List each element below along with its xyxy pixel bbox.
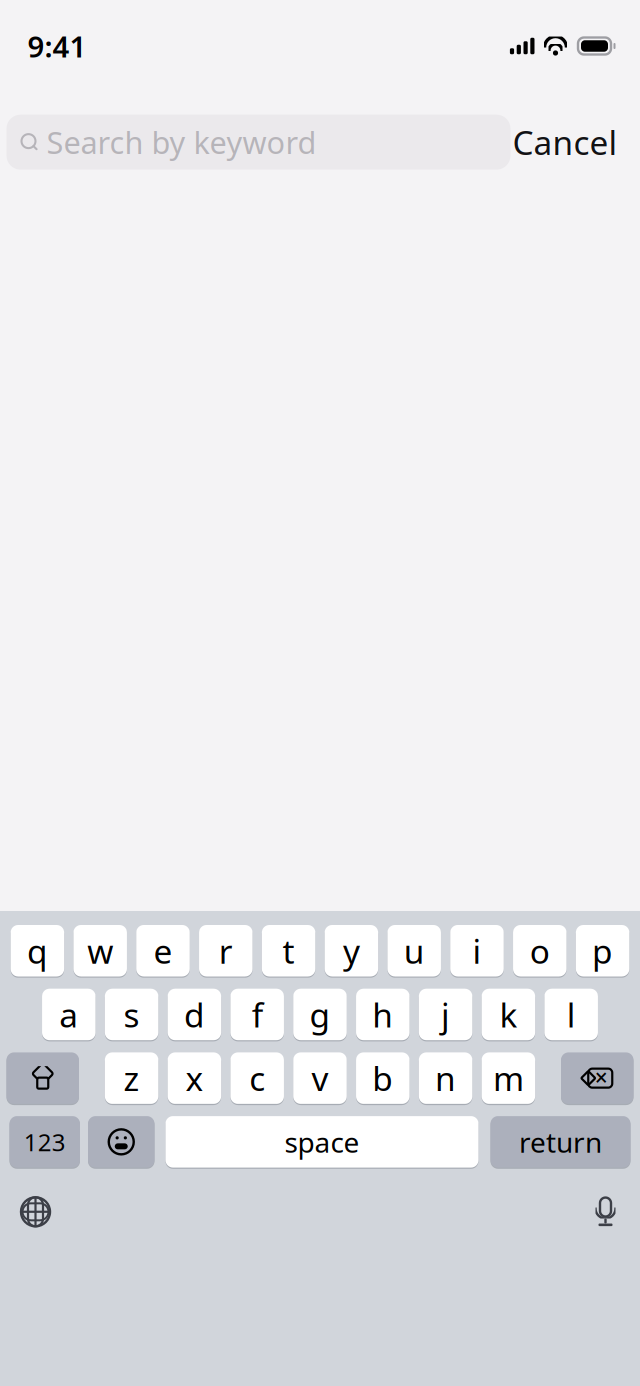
staticText: space [284,1123,359,1160]
staticText: Cancel [512,120,617,164]
staticText: m [493,1056,524,1100]
button[interactable]: g [293,989,347,1041]
button[interactable]: z [105,1052,158,1105]
staticText: return [519,1123,602,1160]
staticText: d [184,992,205,1037]
button[interactable]: a [42,989,96,1041]
button[interactable]: x [168,1052,221,1105]
button[interactable]: v [293,1052,347,1105]
staticText: × [595,1062,608,1092]
button[interactable]: q [11,925,64,978]
button[interactable]: Search by keyword [6,115,510,170]
staticText: s [124,992,140,1037]
button[interactable]: Delete [561,1052,633,1105]
staticText: y [343,929,360,973]
button[interactable]: Cancel [510,112,619,172]
button[interactable]: Next keyboard [9,1186,61,1238]
button[interactable]: k [482,989,535,1041]
button[interactable]: space [165,1116,478,1169]
button[interactable]: d [168,989,221,1041]
staticText: x [185,1056,203,1100]
staticText: k [499,992,517,1037]
staticText: v [311,1056,328,1100]
button[interactable]: n [419,1052,472,1105]
staticText: f [252,992,263,1037]
button[interactable]: c [230,1052,284,1105]
button[interactable]: j [419,989,472,1041]
button[interactable]: s [105,989,158,1041]
staticText: w [87,929,113,973]
staticText: t [283,929,295,973]
button[interactable]: h [356,989,410,1041]
staticText: 9:41 [27,26,86,65]
button[interactable]: m [482,1052,535,1105]
staticText: q [27,929,48,973]
staticText: o [530,929,550,973]
staticText: b [372,1056,393,1100]
button[interactable]: u [387,925,441,978]
staticText: r [219,929,233,973]
staticText: c [249,1056,265,1100]
button[interactable]: return [490,1116,630,1169]
button[interactable]: Shift [6,1052,79,1105]
button[interactable]: Numbers and symbols [9,1116,80,1169]
button[interactable]: r [199,925,252,978]
button[interactable]: b [356,1052,409,1105]
staticText: z [124,1056,140,1100]
button[interactable]: i [450,925,504,978]
staticText: l [567,992,576,1037]
staticText: j [441,992,450,1037]
button[interactable]: w [73,925,127,978]
button[interactable]: y [325,925,378,978]
staticText: h [372,992,393,1037]
staticText: g [309,992,330,1037]
staticText: e [153,929,172,973]
button[interactable]: l [544,989,598,1041]
button[interactable]: e [136,925,190,978]
button[interactable]: Dictation [580,1185,630,1239]
button[interactable]: t [262,925,315,978]
button[interactable]: p [576,925,629,978]
button[interactable]: f [230,989,284,1041]
staticText: 123 [24,1126,66,1158]
staticText: u [404,929,425,973]
staticText: i [472,929,481,973]
button[interactable]: Emoji [88,1116,154,1169]
staticText: n [435,1056,456,1100]
staticText: Search by keyword [46,122,316,162]
staticText: p [592,929,613,973]
staticText: a [59,992,78,1037]
button[interactable]: o [513,925,566,978]
